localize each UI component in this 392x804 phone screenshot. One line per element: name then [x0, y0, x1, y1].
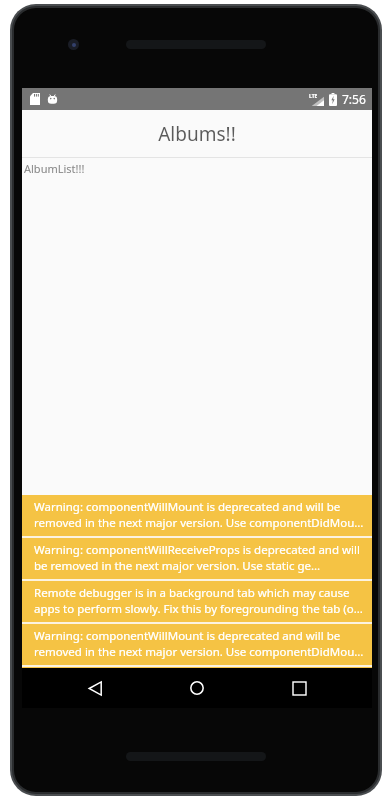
- button[interactable]: Home: [168, 668, 226, 708]
- button[interactable]: Remote debugger is in a background tab w…: [22, 581, 372, 622]
- staticText: Warning: componentWillMount is deprecate…: [34, 628, 366, 659]
- staticText: Remote debugger is in a background tab w…: [34, 585, 366, 616]
- button[interactable]: Recent apps: [270, 668, 328, 708]
- staticText: LTE: [309, 93, 318, 100]
- staticText: Warning: componentWillMount is deprecate…: [34, 499, 366, 530]
- staticText: Albums!!: [158, 121, 236, 147]
- staticText: Warning: componentWillReceiveProps is de…: [34, 542, 366, 573]
- button[interactable]: Warning: componentWillMount is deprecate…: [22, 624, 372, 665]
- button[interactable]: Warning: componentWillReceiveProps is de…: [22, 538, 372, 579]
- button[interactable]: Back: [66, 668, 124, 708]
- staticText: 7:56: [342, 91, 366, 107]
- button[interactable]: Warning: componentWillMount is deprecate…: [22, 495, 372, 536]
- staticText: Warning: componentWillReceiveProps is de…: [34, 671, 366, 702]
- staticText: AlbumList!!!: [24, 161, 85, 176]
- button[interactable]: Warning: componentWillReceiveProps is de…: [22, 667, 372, 708]
